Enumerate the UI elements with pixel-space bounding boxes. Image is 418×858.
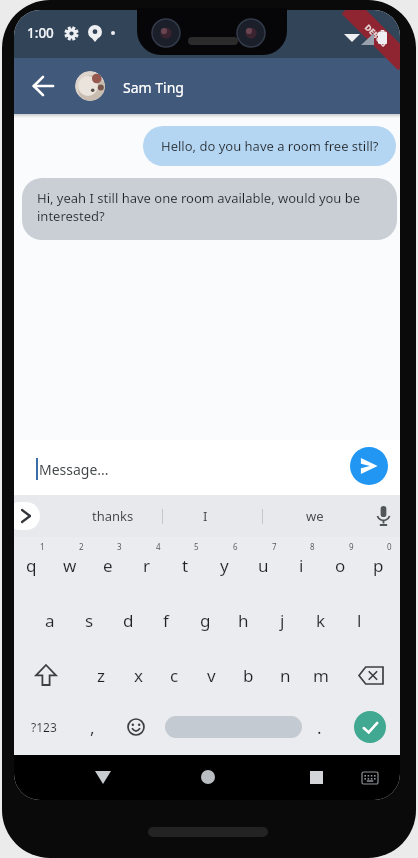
staticText: i (299, 554, 304, 577)
button[interactable]: b (234, 660, 262, 690)
staticText: d (123, 609, 134, 632)
button[interactable] (362, 772, 378, 784)
staticText: I (203, 507, 208, 525)
staticText: y (220, 554, 229, 577)
staticText: 1:00 (27, 24, 54, 42)
button[interactable]: z (87, 660, 115, 690)
staticText: 9 (349, 541, 354, 552)
button[interactable]: s (75, 605, 103, 635)
staticText: m (313, 664, 329, 687)
button[interactable] (201, 770, 215, 784)
button[interactable]: i (287, 550, 315, 580)
staticText: Hello, do you have a room free still? (161, 137, 379, 155)
button[interactable]: , (78, 712, 106, 742)
staticText: DEBUG (363, 22, 390, 49)
staticText: 0 (387, 541, 392, 552)
staticText: z (97, 664, 105, 687)
button[interactable] (165, 716, 302, 738)
button[interactable]: we (306, 495, 324, 537)
staticText: o (335, 554, 346, 577)
button[interactable]: d (114, 605, 142, 635)
button[interactable]: t (171, 550, 199, 580)
staticText: l (357, 609, 362, 632)
staticText: j (280, 609, 285, 632)
staticText: c (170, 664, 179, 687)
button[interactable]: n (271, 660, 299, 690)
staticText: 6 (233, 541, 238, 552)
staticText: w (63, 554, 77, 577)
staticText: k (316, 609, 326, 632)
button[interactable] (31, 74, 55, 98)
button[interactable] (127, 718, 145, 736)
button[interactable] (354, 711, 386, 743)
button[interactable]: m (307, 660, 335, 690)
staticText: s (85, 609, 94, 632)
staticText: a (45, 609, 55, 632)
staticText: , (90, 716, 95, 739)
button[interactable]: u (249, 550, 277, 580)
button[interactable] (95, 771, 111, 784)
button[interactable]: f (152, 605, 180, 635)
staticText: e (103, 554, 113, 577)
button[interactable]: . (305, 712, 333, 742)
staticText: we (306, 507, 324, 525)
staticText: x (134, 664, 143, 687)
button[interactable] (359, 667, 383, 684)
button[interactable]: q (17, 550, 45, 580)
button[interactable]: k (307, 605, 335, 635)
staticText: Hi, yeah I still have one room available… (37, 189, 361, 225)
staticText: q (26, 554, 37, 577)
button[interactable] (377, 506, 390, 526)
button[interactable]: p (364, 550, 392, 580)
staticText: f (163, 609, 169, 632)
button[interactable]: a (36, 605, 64, 635)
button[interactable]: Message... (14, 440, 400, 495)
staticText: Message... (39, 460, 109, 479)
staticText: g (200, 609, 211, 632)
staticText: . (317, 716, 322, 739)
staticText: n (280, 664, 291, 687)
button[interactable]: c (160, 660, 188, 690)
staticText: p (373, 554, 384, 577)
button[interactable]: v (197, 660, 225, 690)
staticText: u (258, 554, 269, 577)
button[interactable]: l (345, 605, 373, 635)
button[interactable] (36, 665, 56, 685)
staticText: thanks (92, 507, 134, 525)
button[interactable] (14, 502, 40, 530)
staticText: 2 (79, 541, 84, 552)
staticText: r (143, 554, 151, 577)
button[interactable]: y (210, 550, 238, 580)
staticText: Sam Ting (123, 78, 184, 97)
staticText: 1 (40, 541, 45, 552)
button[interactable] (350, 447, 388, 485)
staticText: h (238, 609, 249, 632)
staticText: 3 (117, 541, 122, 552)
button[interactable]: j (268, 605, 296, 635)
button[interactable]: g (191, 605, 219, 635)
button[interactable]: ?123 (31, 719, 57, 735)
staticText: 5 (194, 541, 199, 552)
button[interactable]: I (203, 495, 208, 537)
staticText: v (207, 664, 216, 687)
staticText: 4 (156, 541, 161, 552)
staticText: 8 (310, 541, 315, 552)
button[interactable]: x (124, 660, 152, 690)
staticText: t (182, 554, 189, 577)
button[interactable]: r (133, 550, 161, 580)
button[interactable]: h (229, 605, 257, 635)
button[interactable]: e (94, 550, 122, 580)
staticText: 7 (272, 541, 277, 552)
button[interactable]: o (326, 550, 354, 580)
staticText: b (243, 664, 254, 687)
button[interactable]: w (56, 550, 84, 580)
button[interactable]: thanks (92, 495, 134, 537)
